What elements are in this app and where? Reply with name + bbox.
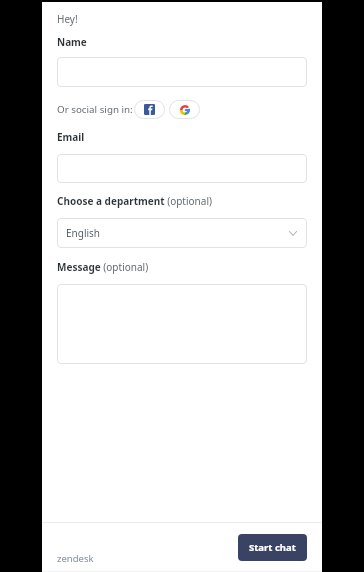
- staticText: English: [66, 226, 101, 240]
- button[interactable]: Email input field: [57, 154, 307, 183]
- staticText: Message (optional): [57, 260, 149, 274]
- button[interactable]: Sign in with Facebook: [134, 100, 165, 119]
- staticText: Or social sign in:: [57, 103, 133, 116]
- button[interactable]: Start chat: [238, 534, 307, 561]
- button[interactable]: English: [57, 218, 307, 248]
- staticText: zendesk: [57, 552, 94, 565]
- button[interactable]: Name input field: [57, 57, 307, 87]
- staticText: Choose a department (optional): [57, 194, 212, 208]
- staticText: Start chat: [249, 541, 296, 554]
- button[interactable]: Sign in with Google: [169, 100, 200, 119]
- staticText: Email: [57, 130, 85, 144]
- button[interactable]: Message input field: [57, 284, 307, 364]
- staticText: Hey!: [57, 12, 78, 26]
- staticText: Name: [57, 35, 87, 49]
